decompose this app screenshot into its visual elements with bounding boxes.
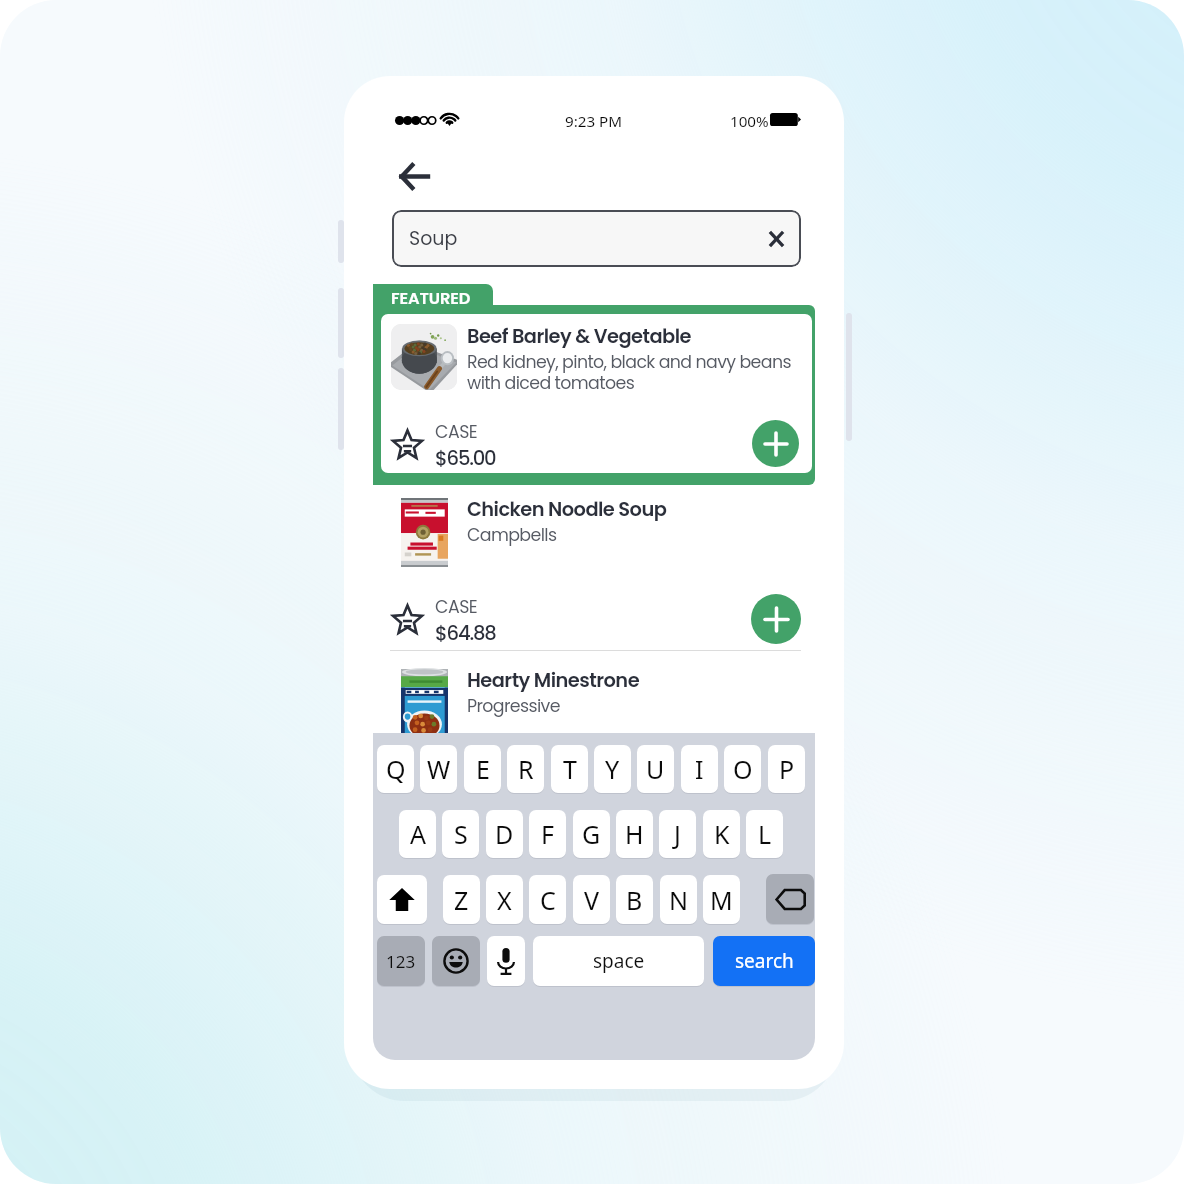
staticText: V — [584, 883, 600, 917]
staticText: K — [714, 817, 730, 851]
button[interactable]: O — [724, 745, 761, 793]
button[interactable]: U — [637, 745, 674, 793]
button[interactable]: B — [616, 875, 653, 924]
staticText: Soup — [409, 225, 458, 252]
button[interactable]: Clear search — [759, 222, 793, 256]
button[interactable]: Backspace — [766, 874, 814, 924]
button[interactable]: 123 — [377, 936, 425, 986]
staticText: CASE — [435, 595, 478, 619]
staticText: search — [735, 948, 794, 974]
staticText: Beef Barley & Vegetable — [467, 323, 691, 350]
button[interactable]: P — [768, 745, 805, 793]
staticText: W — [427, 752, 451, 786]
button[interactable]: C — [529, 875, 566, 924]
button[interactable]: S — [442, 810, 479, 858]
staticText: Chicken Noodle Soup — [467, 496, 667, 523]
button[interactable] — [381, 314, 812, 473]
staticText: Q — [386, 752, 406, 786]
staticText: C — [540, 883, 556, 917]
staticText: Progressive — [467, 694, 560, 718]
staticText: E — [476, 752, 490, 786]
button[interactable]: V — [573, 875, 610, 924]
staticText: N — [669, 883, 689, 917]
button[interactable]: Shift — [377, 875, 427, 924]
button[interactable]: G — [573, 810, 610, 858]
staticText: F — [541, 817, 554, 851]
staticText: space — [593, 948, 645, 974]
button[interactable]: W — [420, 745, 457, 793]
staticText: Z — [454, 883, 469, 917]
button[interactable]: L — [746, 810, 783, 858]
button[interactable]: space — [533, 936, 704, 986]
button[interactable]: H — [616, 810, 653, 858]
button[interactable]: Add to favorites — [386, 424, 428, 466]
staticText: CASE — [435, 420, 478, 444]
staticText: P — [779, 752, 795, 786]
button[interactable]: A — [399, 810, 436, 858]
button[interactable]: N — [660, 875, 697, 924]
staticText: B — [626, 883, 643, 917]
button[interactable]: K — [703, 810, 740, 858]
button[interactable]: Emoji — [432, 936, 480, 986]
staticText: A — [410, 817, 426, 851]
button[interactable]: M — [703, 875, 740, 924]
button[interactable]: T — [551, 745, 588, 793]
button[interactable]: J — [659, 810, 696, 858]
staticText: H — [625, 817, 644, 851]
button[interactable]: E — [464, 745, 501, 793]
button[interactable]: F — [529, 810, 566, 858]
staticText: S — [454, 817, 468, 851]
staticText: 100% — [730, 111, 769, 132]
staticText: M — [710, 883, 733, 917]
button[interactable]: X — [486, 875, 523, 924]
staticText: R — [518, 752, 534, 786]
staticText: 123 — [386, 950, 416, 973]
button[interactable]: I — [681, 745, 718, 793]
button[interactable]: Y — [594, 745, 631, 793]
staticText: J — [674, 817, 681, 851]
staticText: Campbells — [467, 523, 557, 547]
staticText: T — [563, 752, 577, 786]
button[interactable]: Z — [443, 875, 480, 924]
staticText: 9:23 PM — [565, 111, 623, 132]
staticText: G — [582, 817, 601, 851]
button[interactable]: Q — [377, 745, 414, 793]
button[interactable]: Add to cart — [751, 594, 801, 644]
staticText: FEATURED — [391, 287, 471, 310]
button[interactable]: Back — [389, 150, 437, 202]
button[interactable]: Soup — [392, 210, 801, 267]
staticText: Red kidney, pinto, black and navy beans … — [467, 350, 793, 395]
button[interactable]: Add to favorites — [386, 599, 428, 641]
button[interactable]: Add to cart — [752, 420, 799, 467]
button[interactable]: D — [486, 810, 523, 858]
button[interactable]: R — [507, 745, 544, 793]
staticText: X — [497, 883, 512, 917]
staticText: I — [695, 752, 704, 786]
staticText: D — [495, 817, 514, 851]
staticText: U — [646, 752, 665, 786]
staticText: $65.00 — [435, 444, 496, 471]
button[interactable]: search — [713, 936, 815, 986]
staticText: Hearty Minestrone — [467, 667, 640, 694]
staticText: Y — [605, 752, 620, 786]
staticText: O — [733, 752, 753, 786]
staticText: L — [758, 817, 772, 851]
staticText: $64.88 — [435, 619, 496, 646]
button[interactable]: Voice input — [487, 936, 525, 986]
